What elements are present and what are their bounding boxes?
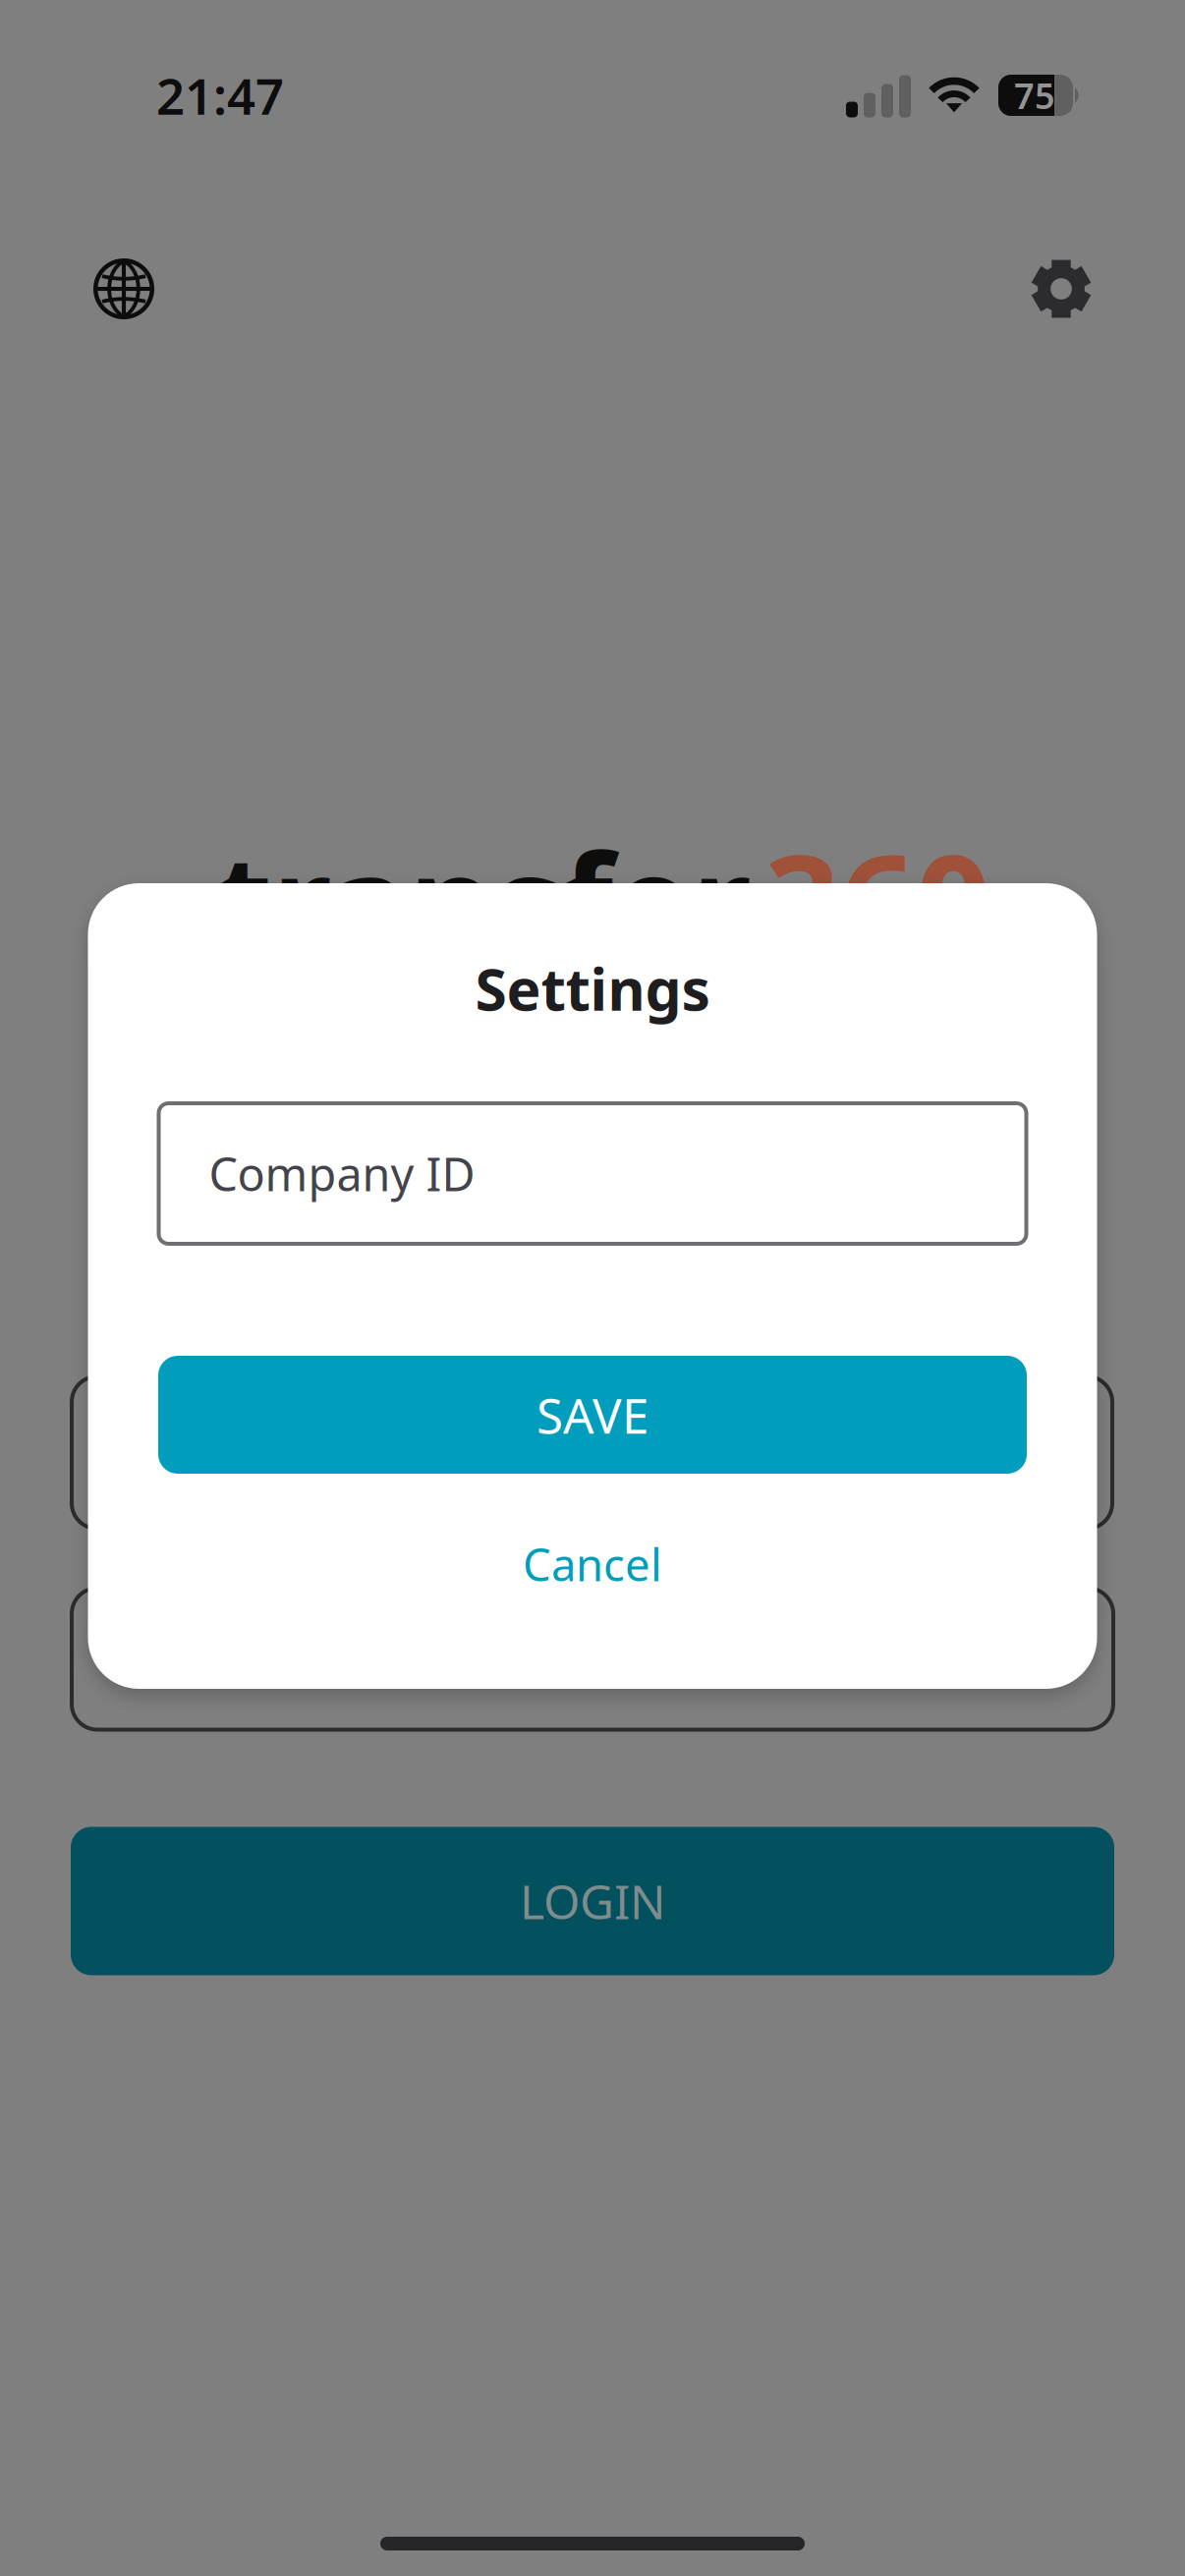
button[interactable]: Username bbox=[72, 1376, 1112, 1529]
button[interactable]: Company ID bbox=[159, 1103, 1026, 1244]
button[interactable]: Password bbox=[72, 1588, 1113, 1730]
staticText: 360 bbox=[764, 812, 991, 988]
button[interactable]: Settings bbox=[1006, 234, 1116, 344]
button[interactable]: Language bbox=[69, 234, 179, 344]
button[interactable]: SAVE bbox=[158, 1356, 1027, 1474]
staticText: 75 bbox=[1014, 72, 1055, 119]
staticText: transfer bbox=[215, 812, 751, 988]
button[interactable]: LOGIN bbox=[71, 1827, 1114, 1975]
staticText: Settings bbox=[475, 950, 710, 1027]
staticText: SAVE bbox=[536, 1383, 649, 1447]
button[interactable]: Cancel bbox=[396, 1523, 789, 1605]
staticText: LOGIN bbox=[520, 1870, 665, 1932]
staticText: Cancel bbox=[523, 1534, 662, 1594]
staticText: Company ID bbox=[209, 1143, 475, 1204]
staticText: 21:47 bbox=[156, 62, 284, 128]
